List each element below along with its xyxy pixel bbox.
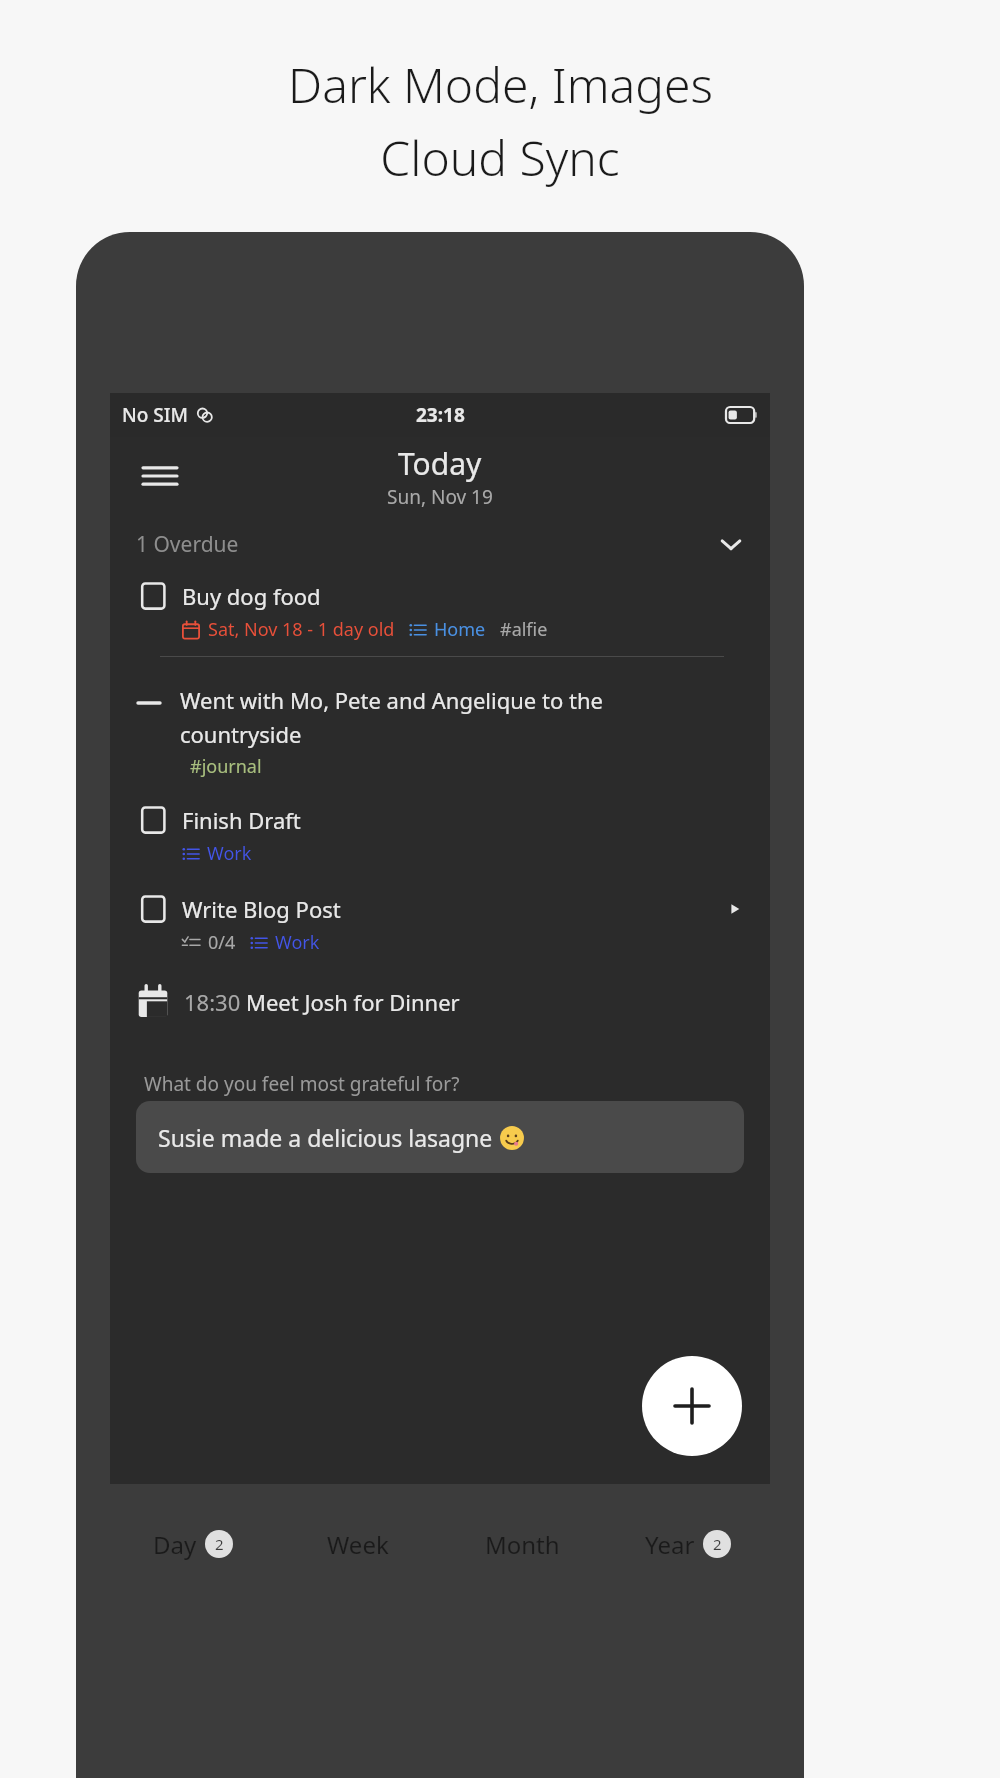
button[interactable]: 1 Overdue: [110, 515, 770, 573]
staticText: Susie made a delicious lasagne: [158, 1122, 499, 1153]
staticText: Year: [645, 1528, 695, 1561]
staticText: What do you feel most grateful for?: [144, 1071, 460, 1097]
staticText: Week: [327, 1528, 389, 1561]
staticText: Went with Mo, Pete and Angelique to the …: [180, 685, 680, 749]
staticText: No SIM: [122, 402, 188, 428]
staticText: 2: [215, 1534, 224, 1554]
staticText: Dark Mode, Images: [288, 52, 713, 117]
button[interactable]: Year: [605, 1484, 770, 1604]
button[interactable]: Buy dog food: [110, 573, 770, 657]
staticText: Work: [207, 841, 252, 866]
staticText: Home: [434, 617, 486, 642]
staticText: Month: [485, 1528, 560, 1561]
staticText: Write Blog Post: [182, 894, 341, 924]
staticText: 23:18: [416, 402, 465, 428]
staticText: #journal: [190, 754, 262, 779]
button[interactable]: Menu: [136, 452, 184, 500]
staticText: Buy dog food: [182, 581, 321, 611]
button[interactable]: Week: [275, 1484, 440, 1604]
staticText: Today: [398, 443, 482, 484]
staticText: 18:30: [184, 987, 246, 1017]
button[interactable]: Susie made a delicious lasagne: [136, 1101, 744, 1173]
staticText: Day: [153, 1528, 197, 1561]
staticText: 1 Overdue: [136, 530, 239, 559]
staticText: 0/4: [208, 930, 236, 955]
button[interactable]: Went with Mo, Pete and Angelique to the …: [110, 685, 770, 779]
staticText: Meet Josh for Dinner: [246, 987, 460, 1017]
staticText: Cloud Sync: [380, 125, 620, 190]
button[interactable]: Write Blog Post: [110, 894, 770, 955]
staticText: Sat, Nov 18 - 1 day old: [208, 617, 395, 642]
staticText: 2: [713, 1534, 722, 1554]
staticText: Sun, Nov 19: [387, 484, 493, 510]
button[interactable]: Day: [110, 1484, 275, 1604]
staticText: Finish Draft: [182, 805, 301, 835]
button[interactable]: Add task: [642, 1356, 742, 1456]
button[interactable]: Finish Draft: [110, 805, 770, 866]
button[interactable]: 18:30: [110, 985, 770, 1019]
staticText: Work: [275, 930, 320, 955]
button[interactable]: Month: [440, 1484, 605, 1604]
staticText: #alfie: [500, 617, 548, 642]
